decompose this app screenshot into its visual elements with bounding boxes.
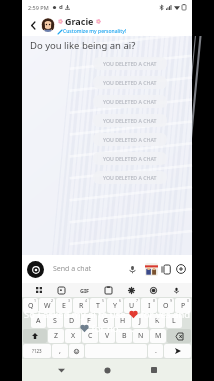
staticText: Z	[54, 331, 59, 341]
button[interactable]: Z	[48, 329, 64, 343]
staticText: Send a chat	[53, 264, 128, 274]
button[interactable]: Send	[164, 344, 191, 358]
staticText: Q	[28, 301, 34, 311]
button[interactable]: Voice input	[170, 284, 182, 296]
button[interactable]: Shift	[23, 329, 47, 343]
button[interactable]: YOU DELETED A CHAT	[93, 171, 167, 184]
button[interactable]: B	[116, 329, 132, 343]
button[interactable]: .	[148, 344, 163, 358]
staticText: 8	[153, 298, 156, 303]
button[interactable]: Back	[26, 18, 40, 32]
button[interactable]: T	[90, 298, 106, 313]
button[interactable]: Stickers	[145, 263, 158, 276]
button[interactable]: F	[81, 314, 97, 328]
button[interactable]: Profile	[41, 18, 55, 32]
button[interactable]: Emoji	[69, 344, 84, 358]
button[interactable]: G	[98, 314, 114, 328]
staticText: C	[88, 331, 93, 341]
button[interactable]: YOU DELETED A CHAT	[93, 57, 167, 70]
button[interactable]: Recents	[146, 362, 162, 378]
staticText: for no......	[89, 322, 134, 335]
button[interactable]: W	[39, 298, 55, 313]
button[interactable]: R	[73, 298, 89, 313]
staticText: 5	[102, 298, 105, 303]
button[interactable]: P	[175, 298, 191, 313]
button[interactable]: Note	[161, 264, 172, 275]
button[interactable]: GIF	[78, 283, 92, 297]
staticText: YOU DELETED A CHAT	[103, 117, 157, 124]
staticText: O	[163, 301, 169, 311]
button[interactable]: Q	[23, 298, 38, 313]
button[interactable]: YOU DELETED A CHAT	[93, 152, 167, 165]
staticText: d	[59, 3, 63, 11]
button[interactable]: YOU DELETED A CHAT	[93, 95, 167, 108]
staticText: YOU DELETED A CHAT	[103, 155, 157, 162]
staticText: 7	[136, 298, 139, 303]
staticText: 0	[187, 298, 190, 303]
button[interactable]: Add	[175, 263, 187, 275]
button[interactable]: E	[56, 298, 72, 313]
staticText: E	[62, 301, 66, 311]
button[interactable]: Send a chat	[48, 261, 142, 277]
button[interactable]: YOU DELETED A CHAT	[93, 76, 167, 89]
button[interactable]: Settings	[125, 284, 137, 296]
button[interactable]: L	[166, 314, 182, 328]
staticText: I	[148, 301, 151, 311]
button[interactable]: Camera	[27, 261, 44, 278]
button[interactable]: ?123	[23, 344, 51, 358]
button[interactable]: Back	[53, 362, 69, 378]
button[interactable]: YOU DELETED A CHAT	[93, 114, 167, 127]
staticText: G	[103, 316, 109, 326]
button[interactable]: C	[82, 329, 98, 343]
button[interactable]: Home	[99, 362, 115, 378]
button[interactable]: Sticker	[55, 284, 67, 296]
button[interactable]: D	[64, 314, 80, 328]
button[interactable]: Y	[107, 298, 123, 313]
staticText: YOU DELETED A CHAT	[103, 79, 157, 86]
button[interactable]: U	[124, 298, 140, 313]
button[interactable]: Clipboard	[102, 284, 114, 296]
staticText: 4	[85, 298, 88, 303]
staticText: So I asked my ai to use	[24, 308, 129, 321]
staticText: A	[36, 316, 41, 326]
staticText: 6	[119, 298, 122, 303]
staticText: J	[139, 316, 141, 326]
button[interactable]: Theme	[147, 284, 159, 296]
button[interactable]: O	[158, 298, 174, 313]
button[interactable]: A	[31, 314, 46, 328]
button[interactable]: ,	[52, 344, 68, 358]
button[interactable]: Backspace	[167, 329, 191, 343]
button[interactable]: I	[141, 298, 157, 313]
staticText: Do you like being an ai?	[30, 39, 136, 52]
staticText: YOU DELETED A CHAT	[103, 136, 157, 143]
button[interactable]: N	[133, 329, 149, 343]
staticText: S	[53, 316, 57, 326]
staticText: L	[172, 316, 176, 326]
button[interactable]: V	[99, 329, 115, 343]
staticText: .	[155, 346, 157, 356]
staticText: Customize my personality!	[63, 28, 127, 35]
button[interactable]: S	[47, 314, 63, 328]
staticText: P	[181, 301, 186, 311]
staticText: D	[69, 316, 75, 326]
button[interactable]: Customize my personality!	[58, 28, 127, 35]
staticText: ?123	[32, 348, 42, 354]
staticText: R	[79, 301, 84, 311]
button[interactable]: X	[65, 329, 81, 343]
button[interactable]: YOU DELETED A CHAT	[93, 133, 167, 146]
staticText: N	[138, 331, 144, 341]
button[interactable]: Apps	[33, 284, 45, 296]
button[interactable]: J	[132, 314, 148, 328]
staticText: 3	[68, 298, 71, 303]
staticText: U	[129, 301, 135, 311]
button[interactable]: K	[149, 314, 165, 328]
staticText: B	[122, 331, 127, 341]
staticText: for yes and	[138, 308, 191, 321]
staticText: 2:59 PM	[28, 4, 49, 11]
button[interactable]: Voice	[128, 265, 137, 274]
button[interactable]: H	[115, 314, 131, 328]
button[interactable]: M	[150, 329, 166, 343]
staticText: 2	[51, 298, 54, 303]
staticText: GIF	[80, 287, 90, 294]
